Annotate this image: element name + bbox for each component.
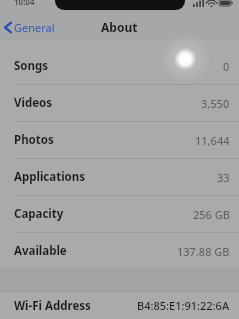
staticText: Songs xyxy=(14,58,49,74)
button[interactable]: Available xyxy=(0,233,239,269)
staticText: Videos xyxy=(14,95,53,111)
staticText: 3,550 xyxy=(201,96,230,111)
staticText: Available xyxy=(14,243,67,259)
button[interactable]: Photos xyxy=(0,122,239,158)
button[interactable]: Applications xyxy=(0,159,239,195)
button[interactable]: Capacity xyxy=(0,196,239,232)
staticText: 137.88 GB xyxy=(177,244,230,259)
staticText: 0 xyxy=(223,59,230,74)
staticText: 256 GB xyxy=(193,207,230,222)
button[interactable]: Videos xyxy=(0,85,239,121)
staticText: Wi-Fi Address xyxy=(14,298,91,314)
staticText: 33 xyxy=(217,170,230,185)
staticText: General xyxy=(14,20,55,35)
staticText: 11,644 xyxy=(195,133,230,148)
staticText: Capacity xyxy=(14,206,64,222)
button[interactable]: General xyxy=(0,17,63,38)
staticText: B4:85:E1:91:22:6A xyxy=(137,298,230,313)
staticText: Applications xyxy=(14,169,86,185)
staticText: 10:04 xyxy=(14,0,35,7)
staticText: About xyxy=(101,19,138,35)
staticText: Photos xyxy=(14,132,54,148)
button[interactable]: Wi-Fi Address xyxy=(0,292,239,319)
button[interactable]: Songs xyxy=(0,48,239,84)
